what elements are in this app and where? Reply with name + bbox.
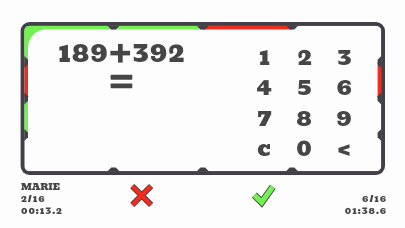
- staticText: 6/16: [362, 191, 387, 206]
- staticText: MARIE: [21, 179, 61, 194]
- button[interactable]: 4: [245, 68, 283, 98]
- staticText: 5: [297, 68, 312, 98]
- staticText: 0: [296, 129, 312, 159]
- button[interactable]: 1: [245, 38, 283, 68]
- staticText: 189: [58, 32, 109, 72]
- staticText: 6: [336, 68, 352, 98]
- button[interactable]: <: [325, 129, 363, 159]
- staticText: 00:13.2: [21, 203, 63, 218]
- staticText: 2/16: [21, 191, 46, 206]
- staticText: 8: [296, 99, 312, 129]
- staticText: 3: [337, 38, 352, 68]
- button[interactable]: 3: [325, 38, 363, 68]
- button[interactable]: 2: [285, 38, 323, 68]
- button[interactable]: 9: [325, 99, 363, 129]
- button[interactable]: 5: [285, 68, 323, 98]
- button[interactable]: 8: [285, 99, 323, 129]
- button[interactable]: 6: [325, 68, 363, 98]
- button[interactable]: 7: [245, 99, 283, 129]
- button[interactable]: c: [245, 129, 283, 159]
- button[interactable]: 0: [285, 129, 323, 159]
- staticText: 392: [132, 32, 186, 72]
- staticText: 7: [257, 99, 272, 129]
- staticText: 4: [256, 68, 272, 98]
- staticText: 1: [259, 38, 270, 68]
- staticText: 9: [336, 99, 352, 129]
- staticText: 2: [297, 38, 312, 68]
- staticText: 01:38.6: [344, 203, 387, 218]
- staticText: c: [257, 129, 271, 159]
- staticText: <: [337, 129, 351, 159]
